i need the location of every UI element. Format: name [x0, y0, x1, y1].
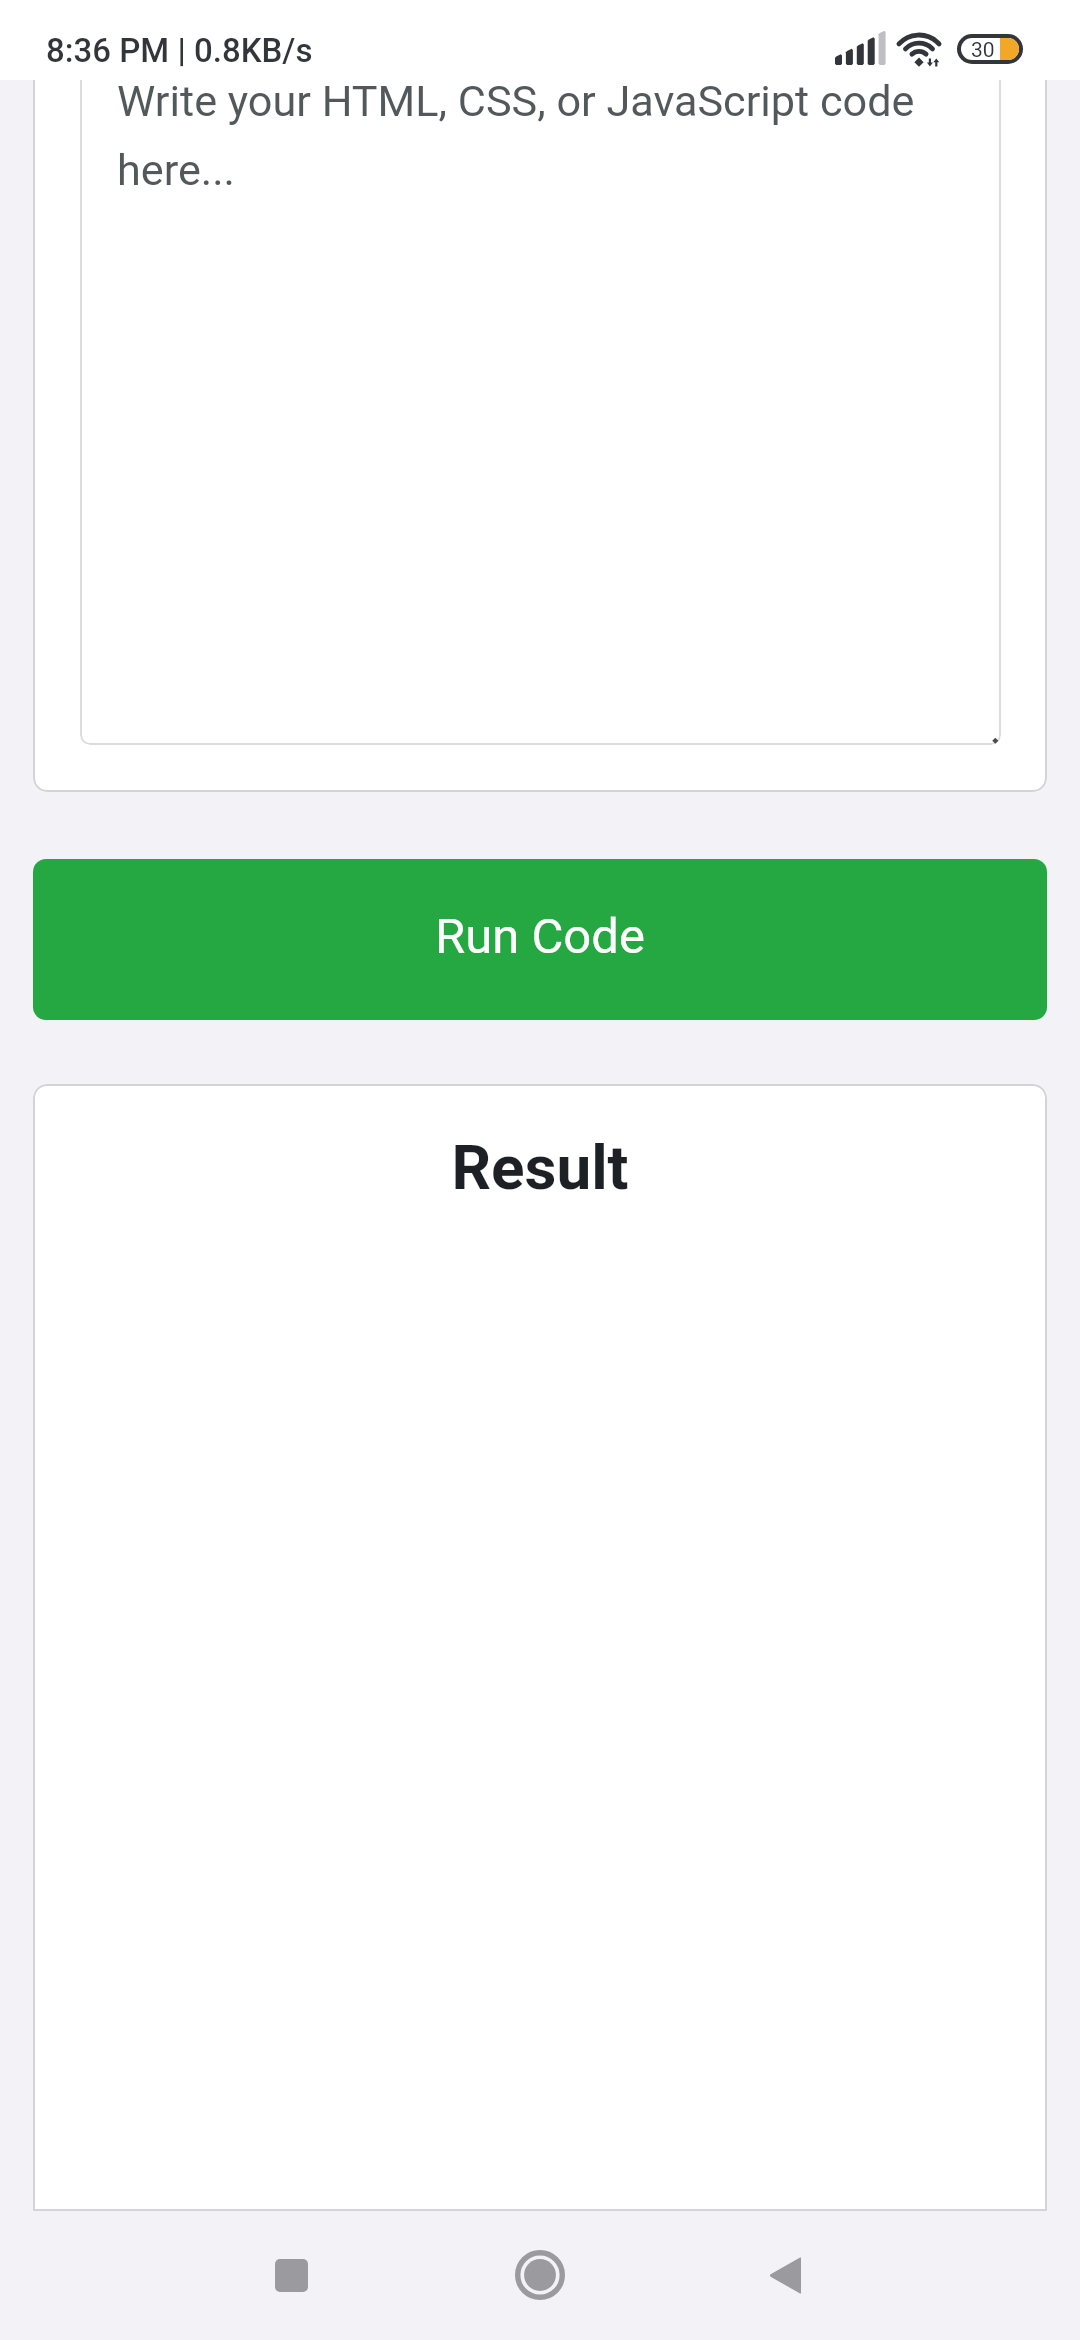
staticText: Write your HTML, CSS, or JavaScript code…: [117, 62, 949, 200]
staticText: 8:36 PM | 0.8KB/s: [46, 31, 313, 70]
button[interactable]: Recent apps: [231, 2215, 351, 2335]
button[interactable]: Run Code: [33, 859, 1047, 1020]
button[interactable]: Back: [725, 2215, 845, 2335]
button[interactable]: Home: [480, 2215, 600, 2335]
staticText: Run Code: [435, 908, 645, 965]
staticText: Result: [451, 1131, 629, 1204]
button[interactable]: [80, 0, 1001, 745]
staticText: 30: [971, 38, 995, 60]
